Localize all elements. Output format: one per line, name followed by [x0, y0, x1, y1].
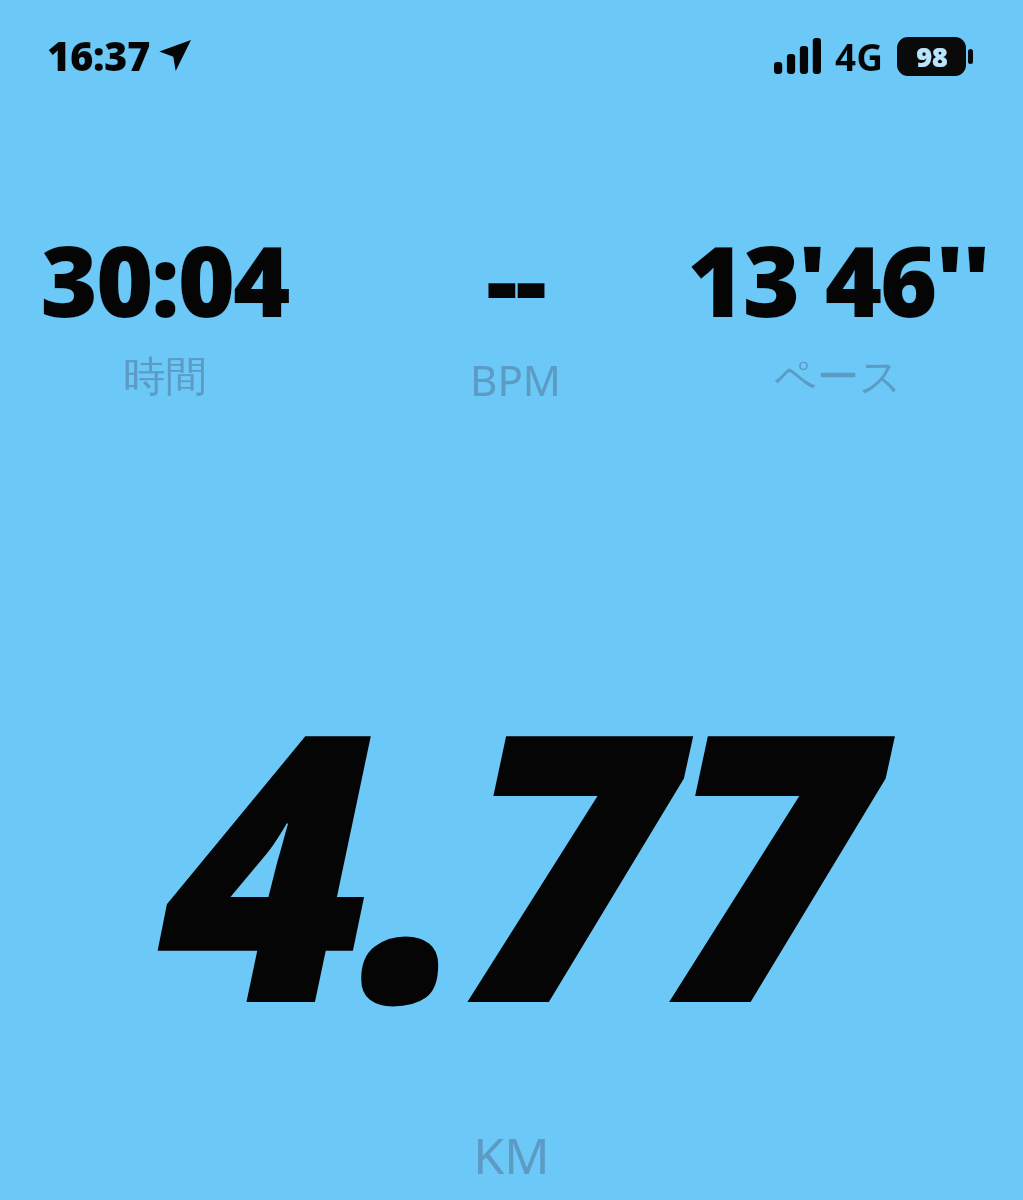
staticText: ペース: [774, 351, 902, 404]
other: Location active: [158, 38, 192, 72]
button[interactable]: 30:04: [40, 212, 289, 404]
staticText: 4.77: [159, 604, 865, 1111]
button[interactable]: 4.77: [0, 604, 1023, 1111]
staticText: 98: [916, 38, 948, 75]
staticText: BPM: [470, 351, 561, 408]
staticText: 4G: [835, 31, 883, 81]
button[interactable]: 13'46'': [687, 212, 989, 404]
other: Battery 98 percent: [897, 37, 973, 76]
staticText: --: [486, 212, 545, 345]
staticText: 30:04: [40, 212, 289, 345]
staticText: 13'46'': [687, 212, 989, 345]
staticText: KM: [473, 1121, 550, 1189]
staticText: 時間: [123, 351, 207, 404]
other: Cellular signal strength: [774, 38, 821, 74]
staticText: 16:37: [47, 28, 150, 82]
button[interactable]: --: [470, 212, 561, 408]
